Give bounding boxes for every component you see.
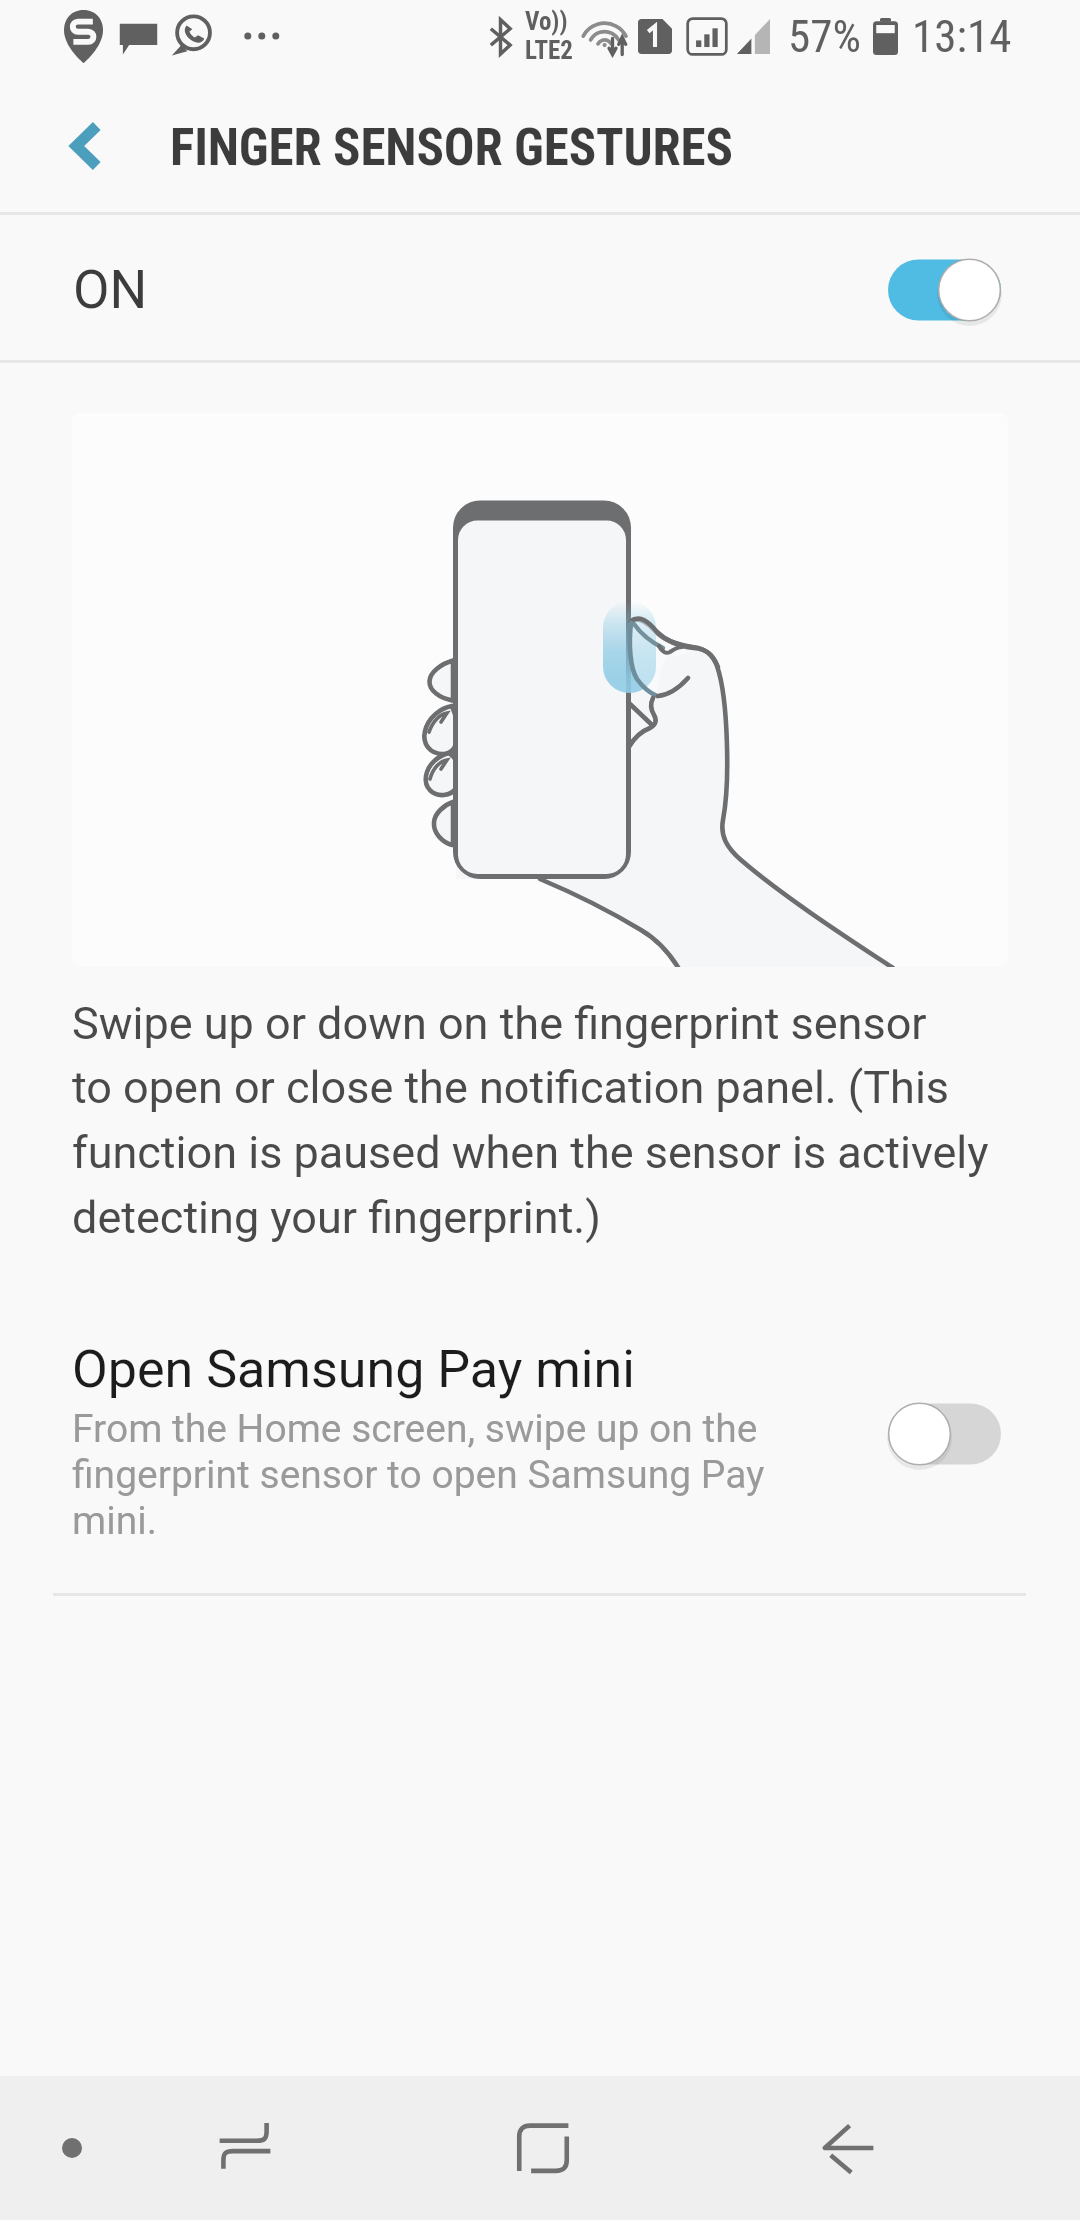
button[interactable]: Recents (173, 2076, 317, 2220)
staticText: From the Home screen, swipe up on the fi… (72, 1406, 765, 1544)
staticText: ON (73, 259, 148, 321)
staticText: 13:14 (912, 10, 1012, 63)
button[interactable]: ON (0, 215, 1080, 360)
staticText: Open Samsung Pay mini (72, 1339, 635, 1400)
staticText: LTE2 (525, 36, 573, 65)
button[interactable]: Show keyboard (30, 2106, 114, 2190)
staticText: Swipe up or down on the fingerprint sens… (72, 997, 989, 1244)
button[interactable]: Open Samsung Pay mini (0, 1339, 1080, 1544)
staticText: Vo)) (525, 7, 568, 36)
button[interactable]: Back (776, 2076, 920, 2220)
staticText: FINGER SENSOR GESTURES (170, 118, 733, 178)
button[interactable]: Home (471, 2076, 615, 2220)
staticText: 57% (788, 10, 861, 63)
button[interactable]: Navigate up (0, 88, 150, 212)
